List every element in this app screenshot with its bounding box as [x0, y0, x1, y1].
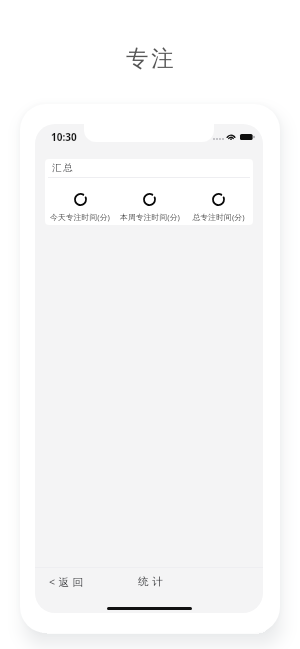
- staticText: 专注: [126, 44, 177, 72]
- staticText: <返回: [49, 575, 87, 589]
- button[interactable]: <返回: [35, 570, 97, 594]
- staticText: 10:30: [51, 130, 77, 144]
- staticText: 统计: [138, 575, 166, 588]
- staticText: 今天专注时间(分): [50, 212, 110, 223]
- button[interactable]: 统计: [128, 570, 176, 593]
- staticText: 本周专注时间(分): [120, 212, 180, 223]
- staticText: 总专注时间(分): [192, 212, 245, 223]
- staticText: 汇总: [52, 162, 74, 174]
